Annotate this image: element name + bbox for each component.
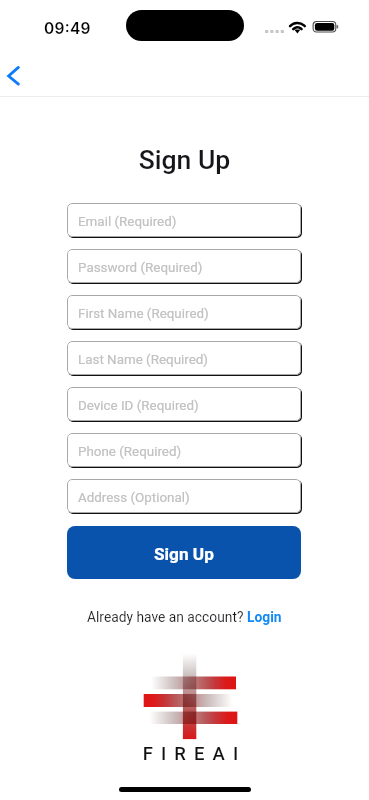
button[interactable]: Login: [247, 609, 282, 625]
staticText: Password (Required): [78, 260, 203, 276]
staticText: Already have an account?: [87, 609, 247, 625]
button[interactable]: Address (Optional): [67, 479, 301, 513]
staticText: Last Name (Required): [78, 352, 209, 368]
button[interactable]: Last Name (Required): [67, 341, 301, 375]
staticText: Email (Required): [78, 214, 177, 230]
button[interactable]: Sign Up: [67, 526, 301, 579]
staticText: Sign Up: [0, 144, 369, 175]
button[interactable]: Password (Required): [67, 249, 301, 283]
staticText: Login: [247, 609, 282, 625]
button[interactable]: First Name (Required): [67, 295, 301, 329]
staticText: 09:49: [44, 19, 91, 38]
staticText: First Name (Required): [78, 306, 209, 322]
button[interactable]: Email (Required): [67, 203, 301, 237]
staticText: Sign Up: [154, 544, 214, 564]
staticText: FIREAI: [10, 743, 369, 765]
staticText: Address (Optional): [78, 490, 190, 506]
button[interactable]: Device ID (Required): [67, 387, 301, 421]
button[interactable]: Back: [0, 58, 38, 94]
staticText: Phone (Required): [78, 444, 182, 460]
staticText: Device ID (Required): [78, 398, 199, 414]
button[interactable]: Phone (Required): [67, 433, 301, 467]
